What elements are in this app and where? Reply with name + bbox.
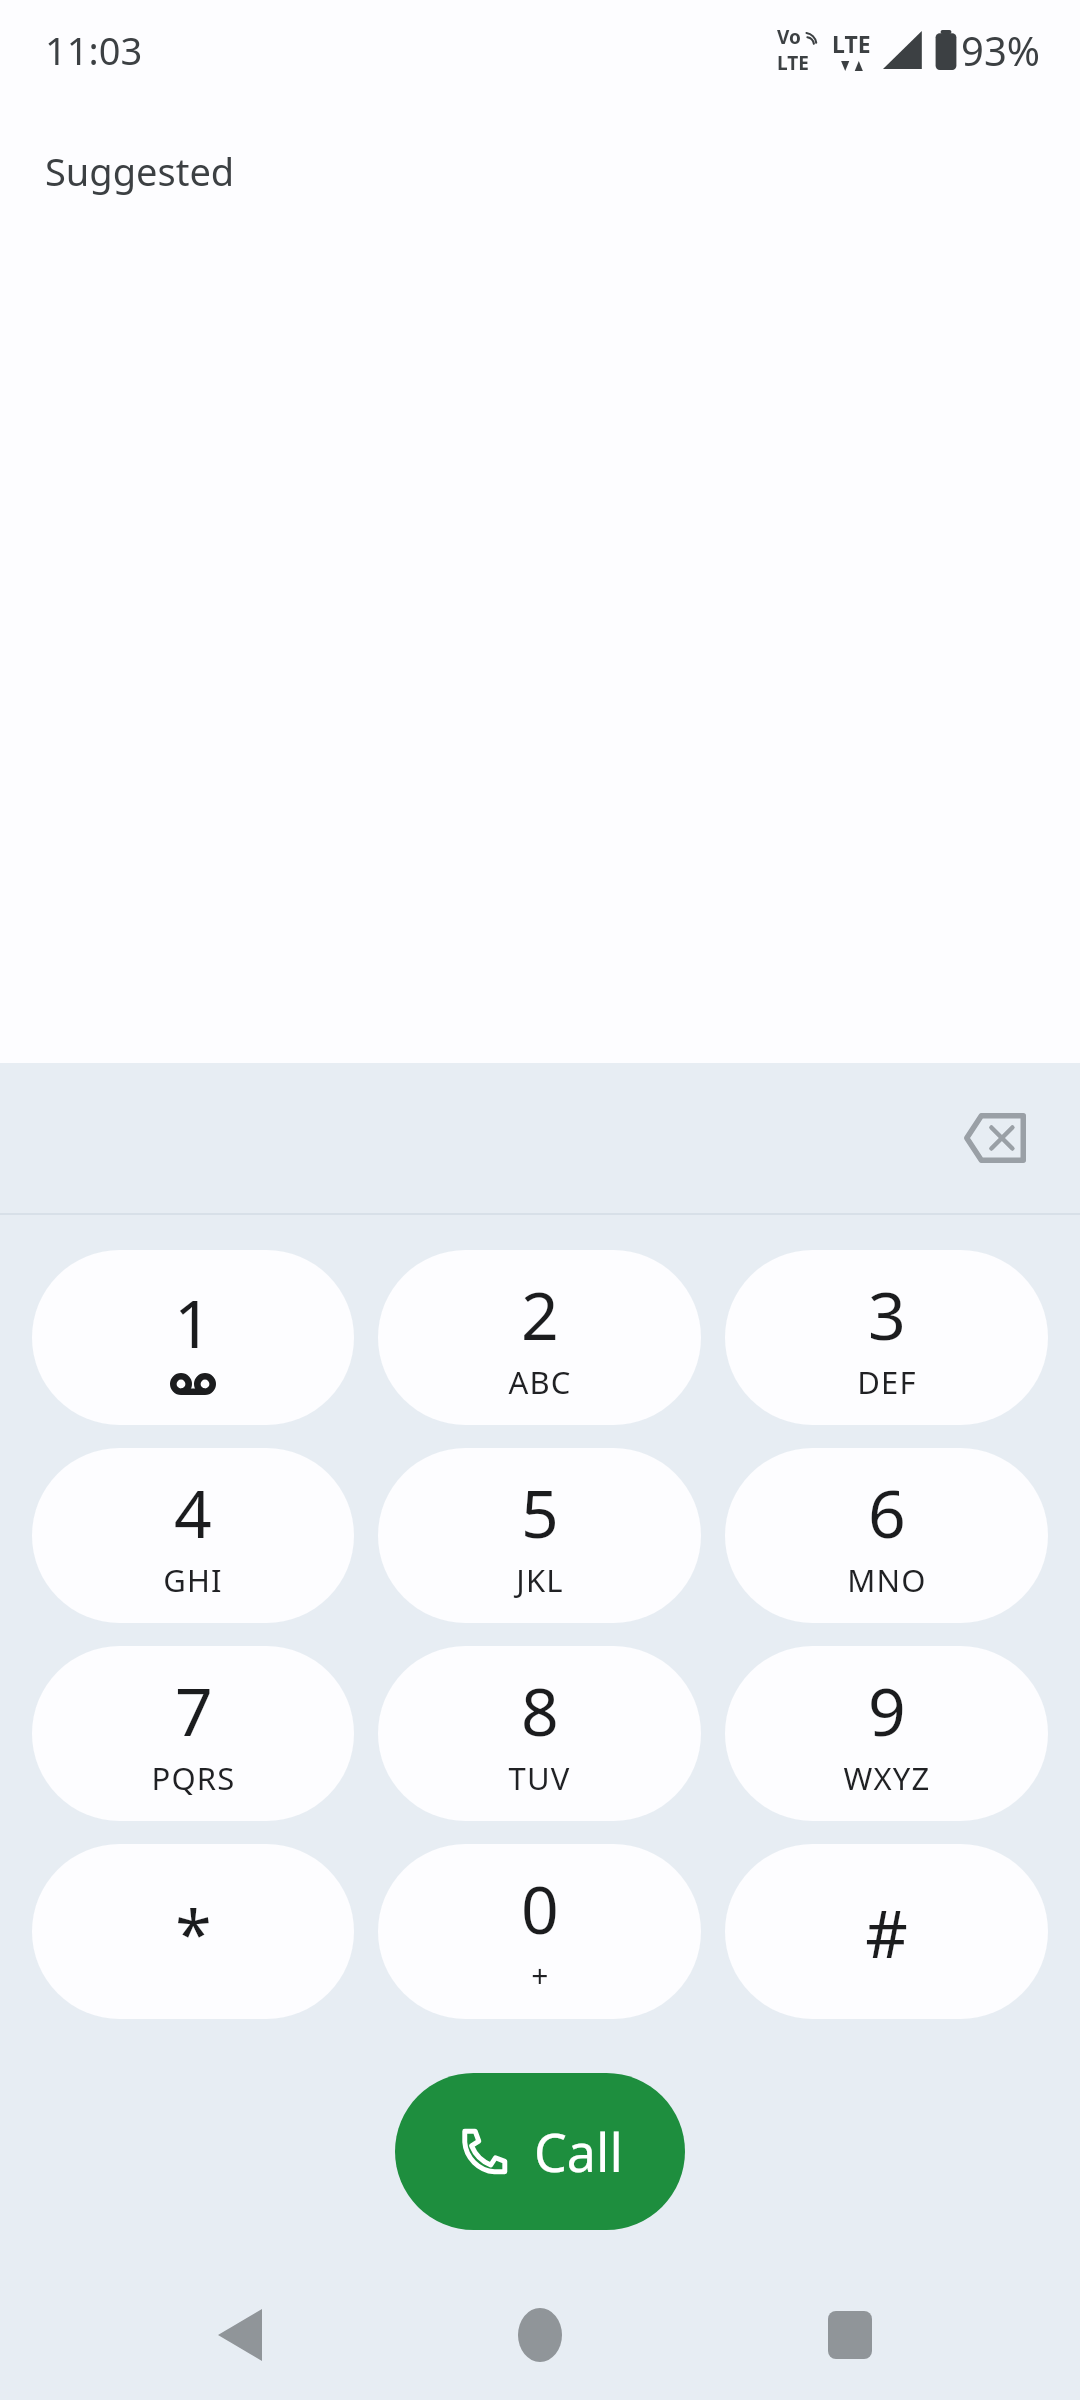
staticText: 6 — [868, 1467, 906, 1557]
button[interactable]: 8 — [378, 1646, 701, 1821]
staticText: Suggested — [45, 145, 235, 197]
staticText: * — [175, 1887, 212, 1977]
staticText: 8 — [521, 1665, 559, 1755]
staticText: 4 — [174, 1467, 212, 1557]
button[interactable]: Back — [180, 2275, 300, 2395]
button[interactable]: 9 — [725, 1646, 1048, 1821]
staticText: LTE — [777, 50, 809, 76]
staticText: Call — [534, 2116, 623, 2187]
staticText: ABC — [508, 1361, 572, 1403]
staticText: 0 — [521, 1863, 559, 1953]
staticText: LTE — [832, 28, 871, 59]
staticText: 1 — [174, 1277, 212, 1367]
button[interactable]: Backspace — [940, 1083, 1050, 1193]
button[interactable]: # — [725, 1844, 1048, 2019]
staticText: Vo — [777, 24, 801, 50]
button[interactable]: 1 — [32, 1250, 354, 1425]
staticText: 7 — [175, 1665, 213, 1755]
button[interactable]: 6 — [725, 1448, 1048, 1623]
staticText: + — [531, 1955, 550, 1996]
button[interactable]: * — [32, 1844, 354, 2019]
staticText: 5 — [521, 1467, 559, 1557]
button[interactable]: Call — [395, 2073, 685, 2230]
staticText: DEF — [857, 1361, 917, 1403]
staticText: 9 — [868, 1665, 906, 1755]
button[interactable]: Home — [480, 2275, 600, 2395]
staticText: JKL — [516, 1559, 564, 1601]
staticText: 11:03 — [45, 24, 143, 76]
staticText: GHI — [163, 1559, 223, 1601]
button[interactable]: 5 — [378, 1448, 701, 1623]
staticText: 2 — [521, 1269, 559, 1359]
button[interactable]: Recent apps — [790, 2275, 910, 2395]
staticText: WXYZ — [843, 1757, 931, 1799]
button[interactable]: 2 — [378, 1250, 701, 1425]
staticText: 3 — [868, 1269, 906, 1359]
staticText: # — [865, 1887, 908, 1977]
staticText: 93% — [961, 23, 1040, 77]
button[interactable]: 0 — [378, 1844, 701, 2019]
button[interactable]: 7 — [32, 1646, 354, 1821]
staticText: PQRS — [151, 1757, 236, 1799]
staticText: MNO — [847, 1559, 927, 1601]
button[interactable]: 3 — [725, 1250, 1048, 1425]
button[interactable]: 4 — [32, 1448, 354, 1623]
staticText: TUV — [508, 1757, 571, 1799]
